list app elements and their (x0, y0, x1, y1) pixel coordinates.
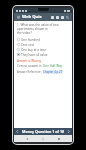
staticText: 1. What was the value of two apartments … (17, 23, 69, 31)
staticText: Answer is Wrong (17, 59, 41, 63)
button[interactable]: Zero cost (17, 42, 69, 47)
button[interactable]: Back (24, 136, 30, 142)
button[interactable]: They have all value (17, 52, 69, 57)
button[interactable]: Chapter 4 p.27 (43, 70, 63, 74)
staticText: Answer Reference: (17, 70, 43, 74)
button[interactable]: Home (40, 136, 46, 142)
button[interactable]: Action 1 (50, 15, 55, 20)
button[interactable]: Menu (16, 15, 21, 20)
button[interactable]: One buy at a time (17, 47, 69, 52)
button[interactable]: Previous question (14, 128, 21, 135)
button[interactable]: Action 2 (55, 15, 60, 20)
button[interactable]: Action 3 (60, 15, 65, 20)
staticText: One buy at a time (21, 48, 47, 52)
staticText: Correct answer is (17, 64, 43, 68)
staticText: One Half Way (43, 64, 63, 68)
staticText: They have all value (21, 53, 48, 57)
button[interactable]: Search (65, 15, 70, 20)
staticText: Chapter 4 p.27 (43, 70, 63, 74)
staticText: the video? (17, 31, 32, 35)
staticText: Zero cost (21, 43, 34, 47)
staticText: Web Quiz (22, 14, 42, 20)
button[interactable]: Next question (65, 128, 72, 135)
button[interactable]: One hundred (17, 37, 69, 42)
button[interactable]: Web Quiz (22, 14, 42, 20)
staticText: Money Question 1 of 10 (22, 129, 64, 134)
button[interactable]: Money Question 1 of 10 (21, 128, 65, 135)
button[interactable]: Recent apps (56, 136, 62, 142)
staticText: One hundred (21, 38, 40, 42)
